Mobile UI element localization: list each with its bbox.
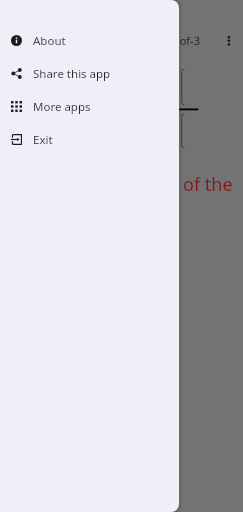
button[interactable]: Exit [0,123,179,156]
button[interactable]: Share this app [0,57,179,90]
staticText: Lesson 1-of-3 [131,33,200,48]
button[interactable]: Close navigation drawer [0,0,243,512]
button[interactable]: More options [215,27,243,55]
staticText: About [33,33,66,49]
other: Exit [11,134,22,145]
staticText: Exit [33,132,53,148]
button[interactable]: About [0,24,179,57]
staticText: More apps [33,99,91,115]
button[interactable]: More apps [0,90,179,123]
staticText: of the [183,172,233,197]
other: More apps [11,101,22,112]
staticText: Share this app [33,66,111,82]
other: Share this app [11,68,22,79]
other: About [11,35,22,46]
